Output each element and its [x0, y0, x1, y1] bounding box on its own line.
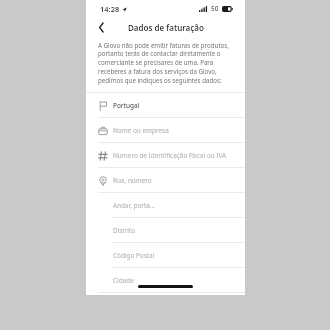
button[interactable]: Código Postal — [86, 243, 245, 267]
staticText: Código Postal — [113, 251, 155, 260]
button[interactable]: Portugal — [86, 93, 245, 117]
button[interactable]: Rua, número — [86, 168, 245, 192]
staticText: 14:28 — [100, 4, 120, 14]
staticText: Cidade — [113, 276, 134, 285]
staticText: Rua, número — [113, 176, 152, 185]
staticText: Andar, porta... — [113, 201, 156, 210]
staticText: Portugal — [113, 101, 140, 110]
staticText: Dados de faturação — [128, 22, 204, 33]
staticText: 50 — [211, 4, 219, 13]
button[interactable]: Back — [92, 18, 110, 36]
staticText: Distrito — [113, 226, 136, 235]
button[interactable]: Número de Identificação Fiscal ou IVA — [86, 143, 245, 167]
button[interactable]: Distrito — [86, 218, 245, 242]
staticText: Nome ou empresa — [113, 126, 169, 135]
button[interactable]: Nome ou empresa — [86, 118, 245, 142]
staticText: A Glovo não pode emitir faturas de produ… — [98, 41, 233, 85]
staticText: Número de Identificação Fiscal ou IVA — [113, 151, 227, 160]
button[interactable]: Andar, porta... — [86, 193, 245, 217]
button[interactable]: Cidade — [86, 268, 245, 292]
